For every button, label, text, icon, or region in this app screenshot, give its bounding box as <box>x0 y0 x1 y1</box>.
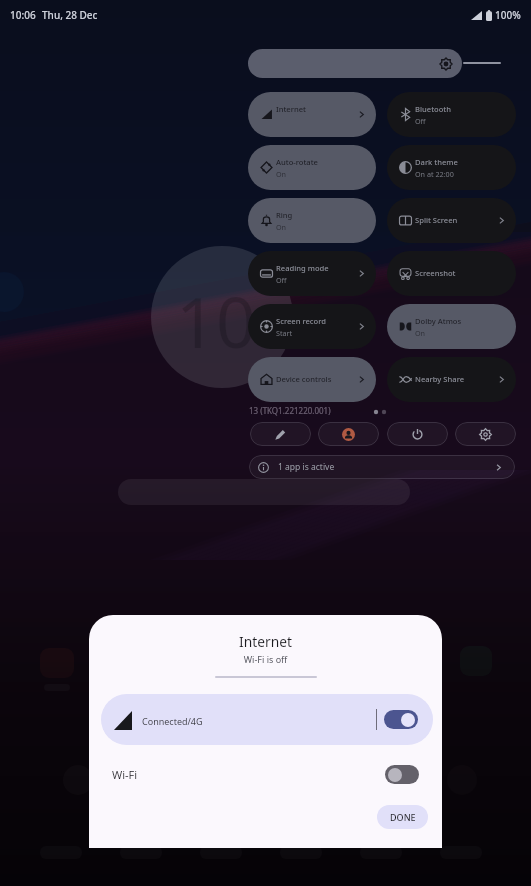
staticText: 13 (TKQ1.221220.001) <box>249 405 331 416</box>
staticText: Off <box>415 116 426 126</box>
staticText: 10:06 <box>10 8 36 22</box>
button[interactable]: On <box>384 710 418 729</box>
button[interactable]: Power <box>387 422 448 446</box>
staticText: 10 <box>176 273 257 368</box>
button[interactable]: Ring <box>248 198 376 243</box>
staticText: Wi-Fi <box>112 767 138 782</box>
staticText: On <box>415 328 426 338</box>
staticText: 1 app is active <box>278 461 335 473</box>
button[interactable]: Screen record <box>248 304 376 349</box>
staticText: Start <box>276 328 293 338</box>
button[interactable]: Reading mode <box>248 251 376 296</box>
button[interactable]: DONE <box>377 805 428 829</box>
button[interactable]: Settings <box>455 422 516 446</box>
staticText: Connected/4G <box>142 715 203 727</box>
button[interactable]: Nearby Share <box>387 357 516 402</box>
staticText: Thu, 28 Dec <box>42 8 98 22</box>
staticText: DONE <box>390 811 416 823</box>
staticText: Split Screen <box>415 215 458 225</box>
staticText: Device controls <box>276 374 332 384</box>
button[interactable]: Bluetooth <box>387 92 516 137</box>
staticText: Internet <box>89 632 442 651</box>
staticText: Dolby Atmos <box>415 316 462 326</box>
staticText: Internet <box>276 104 306 114</box>
staticText: Nearby Share <box>415 374 465 384</box>
button[interactable]: Brightness <box>248 49 462 78</box>
staticText: Reading mode <box>276 263 329 273</box>
button[interactable]: Dolby Atmos <box>387 304 516 349</box>
button[interactable]: Dark theme <box>387 145 516 190</box>
staticText: Off <box>276 275 287 285</box>
button[interactable]: Wi-Fi <box>89 756 442 792</box>
button[interactable]: Auto-rotate <box>248 145 376 190</box>
staticText: On <box>276 169 287 179</box>
staticText: 100% <box>495 8 521 22</box>
staticText: Wi-Fi is off <box>89 653 442 665</box>
button[interactable]: Internet <box>248 92 376 137</box>
button[interactable]: Device controls <box>248 357 376 402</box>
button[interactable]: Connected/4G <box>101 694 433 745</box>
staticText: Auto-rotate <box>276 157 318 167</box>
staticText: Ring <box>276 210 293 220</box>
button[interactable]: Edit tiles <box>250 422 311 446</box>
button[interactable]: Off <box>385 765 419 784</box>
staticText: Dark theme <box>415 157 458 167</box>
button[interactable]: Screenshot <box>387 251 516 296</box>
staticText: Screenshot <box>415 268 456 278</box>
button[interactable]: Split Screen <box>387 198 516 243</box>
staticText: On at 22:00 <box>415 169 454 179</box>
staticText: Bluetooth <box>415 104 451 114</box>
button[interactable]: User <box>318 422 379 446</box>
button[interactable]: 1 app is active <box>249 455 515 479</box>
staticText: On <box>276 222 287 232</box>
staticText: Screen record <box>276 316 326 326</box>
